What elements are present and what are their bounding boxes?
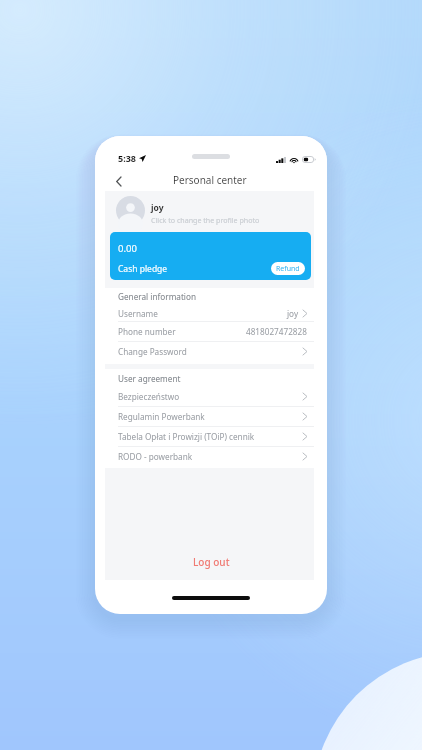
button[interactable]: Log out xyxy=(179,550,244,574)
staticText: joy xyxy=(151,202,164,214)
staticText: Username xyxy=(118,308,158,319)
staticText: Regulamin Powerbank xyxy=(118,411,205,422)
button[interactable]: Regulamin Powerbank xyxy=(105,407,314,426)
staticText: 0.00 xyxy=(118,242,137,255)
button[interactable]: Bezpieczeństwo xyxy=(105,387,314,406)
staticText: Change Password xyxy=(118,346,187,357)
button[interactable]: RODO - powerbank xyxy=(105,447,314,466)
staticText: General information xyxy=(118,291,196,302)
staticText: Personal center xyxy=(173,173,247,187)
button[interactable]: 0.00 xyxy=(110,232,311,280)
staticText: Log out xyxy=(193,555,230,569)
button[interactable]: Back xyxy=(109,172,127,190)
staticText: Cash pledge xyxy=(118,263,168,275)
button[interactable]: joy xyxy=(105,191,314,229)
staticText: 5:38 xyxy=(118,152,136,164)
button[interactable]: Username xyxy=(105,305,314,321)
staticText: 4818027472828 xyxy=(246,326,307,337)
staticText: User agreement xyxy=(118,373,181,384)
button[interactable]: Change Password xyxy=(105,342,314,361)
staticText: joy xyxy=(287,308,299,319)
staticText: RODO - powerbank xyxy=(118,451,193,462)
button[interactable]: Tabela Opłat i Prowizji (TOiP) cennik xyxy=(105,427,314,446)
staticText: Click to change the profile photo xyxy=(151,215,260,225)
button[interactable]: Refund xyxy=(271,262,305,275)
staticText: Phone number xyxy=(118,326,176,337)
staticText: Tabela Opłat i Prowizji (TOiP) cennik xyxy=(118,431,255,442)
staticText: Bezpieczeństwo xyxy=(118,391,180,402)
staticText: Refund xyxy=(276,264,300,274)
button[interactable]: Phone number xyxy=(105,322,314,341)
